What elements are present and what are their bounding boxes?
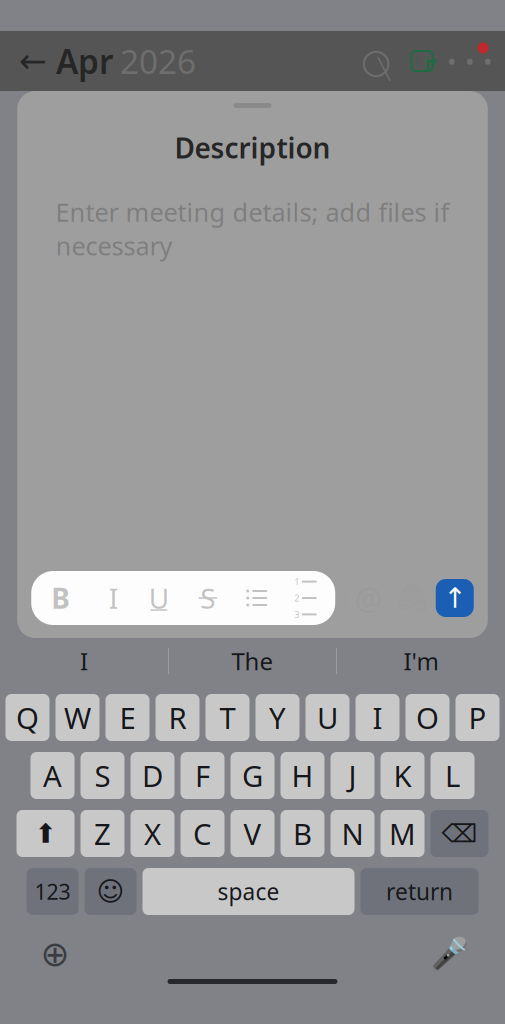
button[interactable]: M <box>380 810 424 857</box>
button[interactable]: L <box>430 752 474 799</box>
button[interactable]: Bold <box>36 571 85 625</box>
button[interactable]: Underline <box>134 571 183 625</box>
staticText: ☺ <box>96 876 124 907</box>
staticText: R <box>168 698 186 737</box>
button[interactable]: P <box>455 694 499 741</box>
button[interactable]: Dictate <box>425 929 475 979</box>
staticText: return <box>386 876 453 906</box>
button[interactable]: The <box>169 638 336 684</box>
staticText: S <box>200 579 215 617</box>
staticText: Apr <box>56 39 113 83</box>
staticText: 2 <box>294 592 299 604</box>
staticText: O <box>416 698 439 737</box>
button[interactable]: W <box>55 694 99 741</box>
button[interactable]: X <box>130 810 174 857</box>
staticText: 1 <box>294 575 299 588</box>
staticText: space <box>217 876 279 906</box>
staticText: 🎤 <box>431 936 469 971</box>
staticText: V <box>243 814 261 853</box>
staticText: Y <box>269 698 286 737</box>
button[interactable]: Search <box>353 38 399 84</box>
button[interactable]: Y <box>255 694 299 741</box>
staticText: W <box>64 698 91 737</box>
staticText: M <box>389 814 416 853</box>
staticText: T <box>219 698 235 737</box>
button[interactable]: S <box>80 752 124 799</box>
button[interactable]: N <box>330 810 374 857</box>
staticText: J <box>348 756 356 795</box>
button[interactable]: Change keyboard <box>30 929 80 979</box>
button[interactable]: Z <box>80 810 124 857</box>
staticText: • • • <box>448 48 492 74</box>
staticText: E <box>119 698 135 737</box>
button[interactable]: return <box>360 868 478 915</box>
button[interactable]: A <box>30 752 74 799</box>
button[interactable]: E <box>105 694 149 741</box>
staticText: ○ <box>361 41 391 81</box>
button[interactable]: Emoji <box>84 868 136 915</box>
button[interactable]: C <box>180 810 224 857</box>
button[interactable]: G <box>230 752 274 799</box>
staticText: C <box>193 814 212 853</box>
staticText: S <box>94 756 110 795</box>
button[interactable]: R <box>155 694 199 741</box>
staticText: The <box>231 645 273 677</box>
button[interactable]: U <box>305 694 349 741</box>
staticText: K <box>393 756 411 795</box>
button[interactable]: F <box>180 752 224 799</box>
staticText: 3 <box>294 608 299 621</box>
staticText: B <box>51 579 70 617</box>
staticText: I'm <box>403 645 438 677</box>
staticText: P <box>468 698 486 737</box>
button[interactable]: Numbered list <box>281 571 330 625</box>
staticText: Enter meeting details; add files if nece… <box>55 195 449 262</box>
button[interactable]: Add to calendar <box>399 38 445 84</box>
button[interactable]: Italic <box>85 571 134 625</box>
staticText: 2026 <box>120 39 196 83</box>
staticText: X <box>144 814 161 853</box>
staticText: D <box>142 756 163 795</box>
button[interactable]: V <box>230 810 274 857</box>
staticText: Z <box>94 814 111 853</box>
button[interactable]: Q <box>5 694 49 741</box>
staticText: Q <box>16 698 39 737</box>
button[interactable]: More options <box>445 38 495 84</box>
button[interactable]: Shift <box>16 810 74 857</box>
button[interactable]: D <box>130 752 174 799</box>
button[interactable]: Numbers <box>26 868 78 915</box>
staticText: B <box>293 814 312 853</box>
staticText: I <box>102 579 118 617</box>
button[interactable]: B <box>280 810 324 857</box>
staticText: ↱ <box>422 54 439 76</box>
staticText: U <box>317 698 338 737</box>
staticText: I <box>372 698 382 737</box>
staticText: ⌫ <box>441 819 477 848</box>
staticText: ↑ <box>443 582 466 614</box>
button[interactable]: I <box>355 694 399 741</box>
staticText: U <box>149 579 169 617</box>
staticText: H <box>291 756 313 795</box>
staticText: ⊕ <box>40 934 69 974</box>
button[interactable]: Send <box>436 579 474 617</box>
staticText: 123 <box>34 877 70 906</box>
staticText: G <box>242 756 263 795</box>
staticText: A <box>43 756 62 795</box>
button[interactable]: I <box>0 638 168 684</box>
button[interactable]: Bulleted list <box>232 571 281 625</box>
button[interactable]: I'm <box>337 638 505 684</box>
button[interactable]: Back <box>10 38 56 84</box>
staticText: I <box>80 645 88 677</box>
staticText: ← <box>19 42 47 80</box>
button[interactable]: H <box>280 752 324 799</box>
button[interactable]: space <box>142 868 354 915</box>
button[interactable]: Strikethrough <box>183 571 232 625</box>
button[interactable]: O <box>405 694 449 741</box>
staticText: ⋮⋮ <box>411 55 433 67</box>
button[interactable]: J <box>330 752 374 799</box>
button[interactable]: K <box>380 752 424 799</box>
button[interactable]: Delete <box>430 810 488 857</box>
button[interactable]: T <box>205 694 249 741</box>
